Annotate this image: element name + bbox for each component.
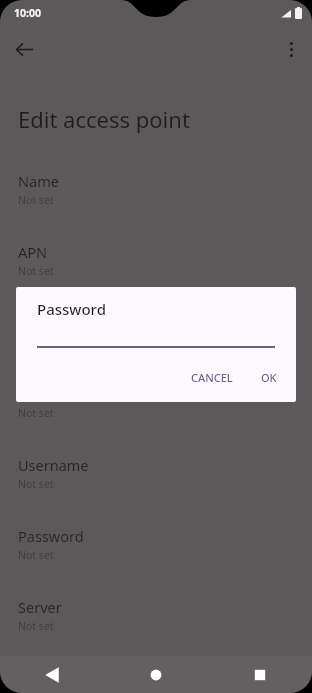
button[interactable]: Name [0, 162, 312, 216]
button[interactable]: Port [0, 375, 312, 429]
staticText: Not set [18, 406, 54, 420]
button[interactable]: Back [0, 656, 104, 693]
button[interactable]: Proxy [0, 304, 312, 358]
staticText: Name [18, 171, 59, 191]
staticText: OK [261, 370, 277, 385]
button[interactable]: OK [252, 365, 286, 390]
staticText: Not set [18, 264, 54, 278]
staticText: APN [18, 242, 48, 262]
button[interactable]: Home [104, 656, 208, 693]
staticText: CANCEL [191, 370, 233, 385]
button[interactable]: Recent apps [208, 656, 312, 693]
staticText: Server [18, 597, 62, 617]
staticText: Username [18, 455, 89, 475]
staticText: Password [18, 526, 84, 546]
staticText: MMSC [18, 668, 62, 684]
button[interactable]: APN [0, 233, 312, 287]
staticText: Not set [18, 477, 54, 491]
button[interactable]: More options [274, 32, 308, 66]
staticText: Not set [18, 619, 54, 633]
button[interactable]: Username [0, 446, 312, 500]
button[interactable]: Server [0, 588, 312, 642]
staticText: Not set [18, 335, 54, 349]
staticText: Proxy [18, 313, 57, 333]
staticText: Edit access point [18, 104, 190, 134]
staticText: 10:00 [14, 6, 41, 20]
button[interactable]: Back [6, 31, 42, 67]
button[interactable]: Password [0, 517, 312, 571]
staticText: Password [37, 299, 106, 319]
staticText: Port [18, 384, 47, 404]
staticText: Not set [18, 548, 54, 562]
staticText: Not set [18, 193, 54, 207]
button[interactable]: CANCEL [182, 365, 242, 390]
button[interactable]: MMSC [0, 659, 312, 693]
